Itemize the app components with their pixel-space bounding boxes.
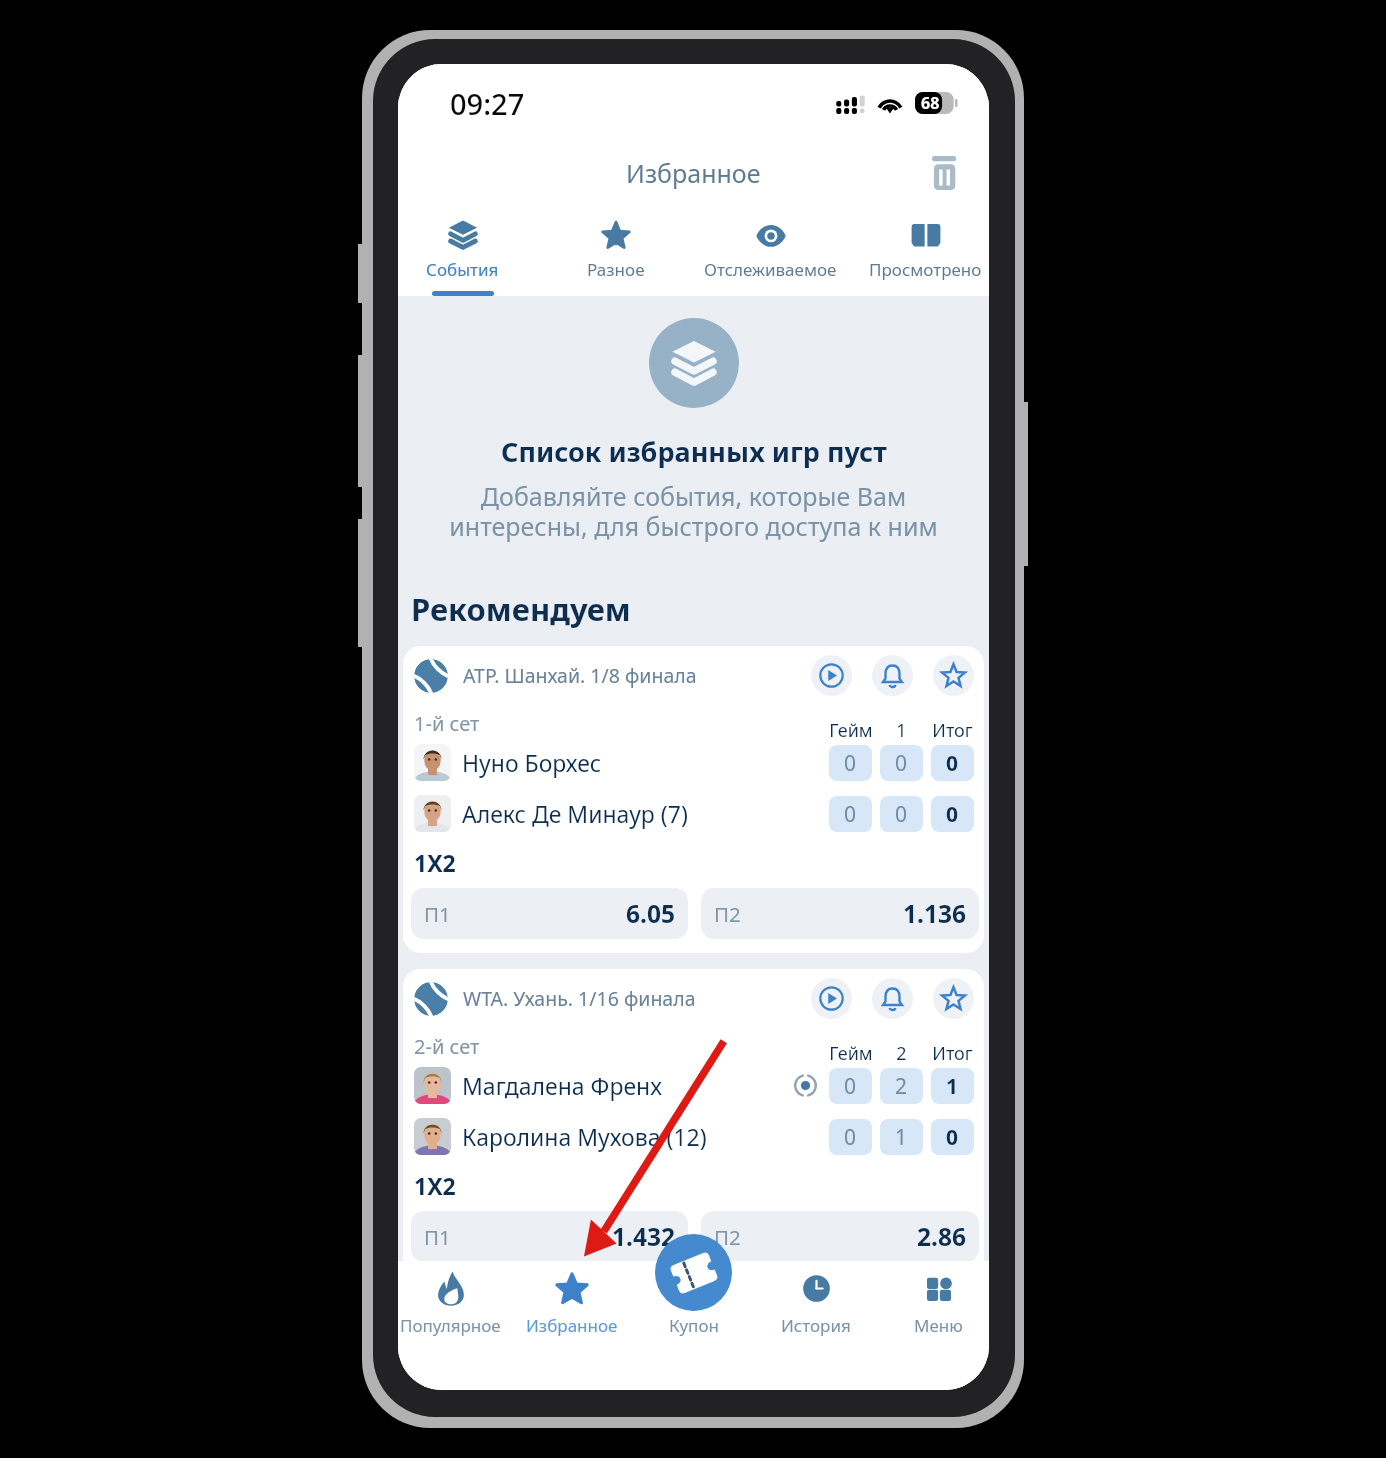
- button[interactable]: Купон: [655, 1234, 732, 1311]
- button[interactable]: Отслеживаемое: [693, 206, 848, 296]
- staticText: Нуно Борхес: [462, 747, 829, 778]
- button[interactable]: П1: [411, 888, 688, 939]
- staticText: Популярное: [400, 1314, 501, 1337]
- staticText: Просмотрено: [869, 258, 982, 281]
- staticText: Список избранных игр пуст: [501, 433, 887, 470]
- button[interactable]: Купон: [633, 1261, 755, 1361]
- staticText: Отслеживаемое: [704, 258, 837, 281]
- staticText: Купон: [669, 1314, 719, 1337]
- staticText: 1-й сет: [414, 710, 829, 733]
- staticText: 0: [946, 800, 959, 829]
- staticText: 1: [895, 1123, 908, 1152]
- staticText: ATP. Шанхай. 1/8 финала: [463, 662, 811, 689]
- button[interactable]: П2: [701, 1211, 979, 1262]
- staticText: П2: [714, 1223, 917, 1251]
- staticText: 1X2: [414, 1170, 456, 1201]
- staticText: Гейм: [829, 1041, 872, 1064]
- staticText: 2: [896, 1041, 907, 1064]
- staticText: 0: [895, 749, 908, 778]
- button[interactable]: Популярное: [398, 1261, 511, 1361]
- staticText: 2.86: [917, 1220, 966, 1253]
- staticText: П1: [424, 900, 626, 928]
- button[interactable]: Добавить в избранное: [933, 655, 974, 696]
- staticText: История: [781, 1314, 851, 1337]
- staticText: 6.05: [626, 897, 675, 930]
- staticText: 1X2: [414, 847, 456, 878]
- staticText: П2: [714, 900, 903, 928]
- staticText: 0: [844, 1123, 857, 1152]
- button[interactable]: Меню: [877, 1261, 989, 1361]
- staticText: 1: [946, 1072, 959, 1101]
- staticText: 2-й сет: [414, 1033, 829, 1056]
- staticText: 0: [844, 749, 857, 778]
- button[interactable]: Уведомления: [872, 655, 913, 696]
- staticText: Гейм: [829, 718, 872, 741]
- staticText: 0: [946, 1123, 959, 1152]
- staticText: 68: [921, 92, 940, 114]
- staticText: 1.432: [612, 1220, 675, 1253]
- staticText: 09:27: [450, 84, 525, 123]
- button[interactable]: Смотреть трансляцию: [811, 655, 852, 696]
- button[interactable]: Разное: [539, 206, 693, 296]
- staticText: П1: [424, 1223, 612, 1251]
- button[interactable]: WTA. Ухань. 1/16 финала: [403, 969, 984, 1276]
- button[interactable]: Уведомления: [872, 978, 913, 1019]
- staticText: События: [426, 258, 499, 281]
- staticText: Меню: [914, 1314, 963, 1337]
- staticText: Каролина Мухова (12): [462, 1121, 829, 1152]
- button[interactable]: События: [398, 206, 539, 296]
- button[interactable]: П1: [411, 1211, 688, 1262]
- staticText: WTA. Ухань. 1/16 финала: [463, 985, 811, 1012]
- staticText: 1: [896, 718, 907, 741]
- staticText: Итог: [932, 1041, 973, 1064]
- staticText: 0: [844, 1072, 857, 1101]
- staticText: Добавляйте события, которые Вам интересн…: [398, 479, 989, 543]
- staticText: 0: [844, 800, 857, 829]
- button[interactable]: Смотреть трансляцию: [811, 978, 852, 1019]
- staticText: 0: [946, 749, 959, 778]
- button[interactable]: ATP. Шанхай. 1/8 финала: [403, 646, 984, 953]
- staticText: Итог: [932, 718, 973, 741]
- button[interactable]: Избранное: [511, 1261, 633, 1361]
- staticText: 2: [895, 1072, 908, 1101]
- button[interactable]: Добавить в избранное: [933, 978, 974, 1019]
- button[interactable]: Удалить всё: [921, 150, 967, 196]
- staticText: Избранное: [626, 156, 761, 190]
- staticText: Рекомендуем: [411, 588, 631, 630]
- staticText: 1.136: [903, 897, 966, 930]
- button[interactable]: История: [755, 1261, 877, 1361]
- staticText: 0: [895, 800, 908, 829]
- staticText: Избранное: [526, 1314, 618, 1337]
- button[interactable]: П2: [701, 888, 979, 939]
- staticText: Алекс Де Минаур (7): [462, 798, 829, 829]
- button[interactable]: Просмотрено: [848, 206, 989, 296]
- staticText: Разное: [587, 258, 645, 281]
- staticText: Магдалена Френх: [462, 1070, 794, 1101]
